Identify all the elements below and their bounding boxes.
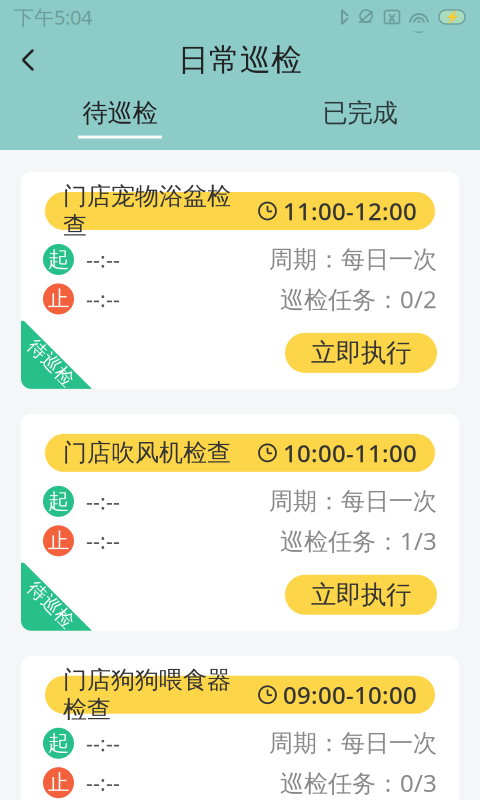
staticText: 立即执行 xyxy=(311,337,411,368)
staticText: 周期：每日一次 xyxy=(269,245,437,274)
button[interactable]: 门店宠物浴盆检查 xyxy=(21,172,459,389)
button[interactable]: 门店狗狗喂食器检查 xyxy=(21,656,459,800)
staticText: 待巡检 xyxy=(22,351,79,374)
staticText: 周期：每日一次 xyxy=(269,728,437,758)
button[interactable]: 立即执行 xyxy=(285,575,437,615)
staticText: 巡检任务：0/3 xyxy=(280,767,437,799)
button[interactable]: Back xyxy=(0,34,56,86)
staticText: 门店狗狗喂食器检查 xyxy=(63,665,231,724)
button[interactable]: 已完成 xyxy=(240,88,480,148)
staticText: 起 xyxy=(48,488,69,514)
button[interactable]: 立即执行 xyxy=(285,333,437,373)
staticText: --:-- xyxy=(86,768,120,797)
staticText: 11:00-12:00 xyxy=(277,195,417,227)
staticText: 周期：每日一次 xyxy=(269,487,437,516)
staticText: 门店吹风机检查 xyxy=(63,438,231,468)
staticText: x xyxy=(388,8,396,26)
staticText: 巡检任务：1/3 xyxy=(280,525,437,557)
staticText: 日常巡检 xyxy=(178,41,302,79)
staticText: 下午5:04 xyxy=(14,4,92,30)
staticText: 待巡检 xyxy=(82,97,157,128)
staticText: 待巡检 xyxy=(22,593,79,616)
staticText: 止 xyxy=(48,528,69,554)
staticText: 起 xyxy=(48,730,69,756)
staticText: 止 xyxy=(48,286,69,312)
staticText: 10:00-11:00 xyxy=(277,437,417,469)
staticText: 巡检任务：0/2 xyxy=(280,283,437,315)
button[interactable]: 待巡检 xyxy=(0,88,240,148)
staticText: --:-- xyxy=(86,527,120,555)
staticText: 立即执行 xyxy=(311,579,411,610)
staticText: --:-- xyxy=(86,245,120,274)
staticText: 09:00-10:00 xyxy=(277,679,417,711)
staticText: 已完成 xyxy=(322,97,397,128)
staticText: 止 xyxy=(48,770,69,796)
staticText: 门店宠物浴盆检查 xyxy=(63,181,231,240)
staticText: --:-- xyxy=(86,285,120,313)
button[interactable]: 门店吹风机检查 xyxy=(21,414,459,631)
staticText: 起 xyxy=(48,246,69,273)
staticText: --:-- xyxy=(86,729,120,757)
staticText: ⚡ xyxy=(444,10,459,24)
staticText: --:-- xyxy=(86,487,120,515)
